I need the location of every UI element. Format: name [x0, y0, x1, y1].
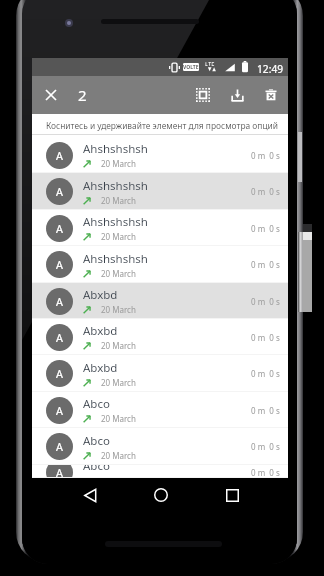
- button[interactable]: A: [32, 319, 288, 355]
- button[interactable]: A: [32, 428, 288, 465]
- staticText: A: [56, 184, 63, 199]
- staticText: 20 March: [101, 304, 136, 315]
- staticText: 20 March: [101, 450, 136, 461]
- button[interactable]: A: [32, 283, 288, 319]
- staticText: 20 March: [101, 475, 136, 478]
- staticText: 0 m 0 s: [251, 186, 280, 197]
- staticText: A: [56, 465, 63, 478]
- staticText: 0 m 0 s: [251, 467, 280, 478]
- button[interactable]: Close selection: [32, 76, 70, 114]
- button[interactable]: A: [32, 173, 288, 210]
- staticText: A: [56, 257, 63, 272]
- staticText: Abco: [83, 396, 110, 412]
- staticText: VOLTE: [183, 64, 199, 71]
- staticText: 20 March: [101, 377, 136, 388]
- staticText: Abco: [83, 433, 110, 449]
- button[interactable]: Home: [147, 481, 175, 509]
- button[interactable]: A: [32, 392, 288, 428]
- staticText: A: [56, 403, 63, 418]
- button[interactable]: Delete: [254, 78, 288, 112]
- staticText: 12:49: [257, 62, 284, 76]
- button[interactable]: A: [32, 355, 288, 392]
- staticText: A: [56, 221, 63, 236]
- button[interactable]: A: [32, 246, 288, 283]
- staticText: 0 m 0 s: [251, 368, 280, 379]
- staticText: 0 m 0 s: [251, 405, 280, 416]
- staticText: Abxbd: [83, 287, 118, 303]
- button[interactable]: Back: [76, 481, 104, 509]
- staticText: Ahshshshsh: [83, 178, 148, 194]
- staticText: 0 m 0 s: [251, 296, 280, 307]
- staticText: Abco: [83, 465, 110, 474]
- staticText: 20 March: [101, 158, 136, 169]
- staticText: Ahshshshsh: [83, 251, 148, 267]
- staticText: A: [56, 330, 63, 345]
- staticText: Ahshshshsh: [83, 214, 148, 230]
- staticText: 20 March: [101, 340, 136, 351]
- staticText: 20 March: [101, 268, 136, 279]
- staticText: 0 m 0 s: [251, 332, 280, 343]
- staticText: A: [56, 148, 63, 163]
- staticText: 0 m 0 s: [251, 441, 280, 452]
- staticText: 0 m 0 s: [251, 259, 280, 270]
- button[interactable]: Select all: [186, 78, 220, 112]
- button[interactable]: Download: [220, 78, 254, 112]
- staticText: 0 m 0 s: [251, 150, 280, 161]
- staticText: A: [56, 366, 63, 381]
- staticText: Abxbd: [83, 323, 118, 339]
- staticText: Abxbd: [83, 360, 118, 376]
- button[interactable]: A: [32, 465, 288, 478]
- staticText: A: [56, 294, 63, 309]
- staticText: 0 m 0 s: [251, 223, 280, 234]
- staticText: Коснитесь и удерживайте элемент для прос…: [46, 120, 278, 131]
- staticText: 20 March: [101, 195, 136, 206]
- staticText: Ahshshshsh: [83, 141, 148, 157]
- button[interactable]: Recent apps: [218, 481, 246, 509]
- staticText: 2: [78, 85, 87, 105]
- staticText: A: [56, 439, 63, 454]
- button[interactable]: A: [32, 137, 288, 173]
- button[interactable]: A: [32, 210, 288, 246]
- staticText: 20 March: [101, 413, 136, 424]
- staticText: 20 March: [101, 231, 136, 242]
